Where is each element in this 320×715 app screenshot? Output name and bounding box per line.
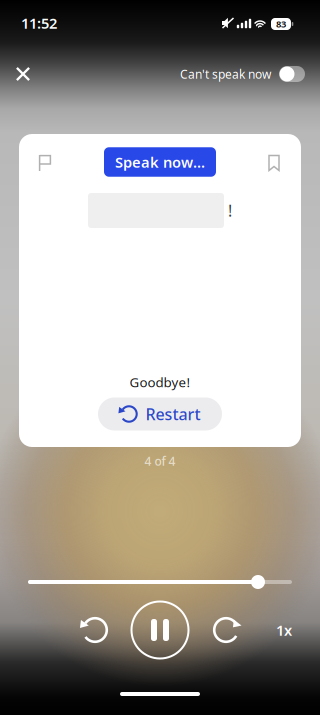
button[interactable]: Report xyxy=(26,146,64,180)
button[interactable]: 1x xyxy=(263,610,305,650)
button[interactable]: Can't speak now xyxy=(180,54,320,94)
button[interactable]: Restart xyxy=(98,397,222,430)
button[interactable]: Skip forward xyxy=(200,604,252,656)
staticText: 83 xyxy=(276,18,286,30)
button[interactable]: Close xyxy=(1,53,45,95)
button[interactable]: Skip back xyxy=(69,604,121,656)
staticText: 1x xyxy=(276,620,292,640)
button[interactable]: Save xyxy=(255,146,293,180)
staticText: 4 of 4 xyxy=(144,453,175,469)
button[interactable]: Pause xyxy=(129,599,191,661)
button[interactable]: Speak now... xyxy=(104,147,216,177)
staticText: Speak now... xyxy=(115,152,205,172)
staticText: Can't speak now xyxy=(180,66,271,82)
staticText: ! xyxy=(228,200,232,221)
staticText: 11:52 xyxy=(21,13,57,33)
staticText: Restart xyxy=(145,403,200,425)
staticText: Goodbye! xyxy=(129,373,190,391)
